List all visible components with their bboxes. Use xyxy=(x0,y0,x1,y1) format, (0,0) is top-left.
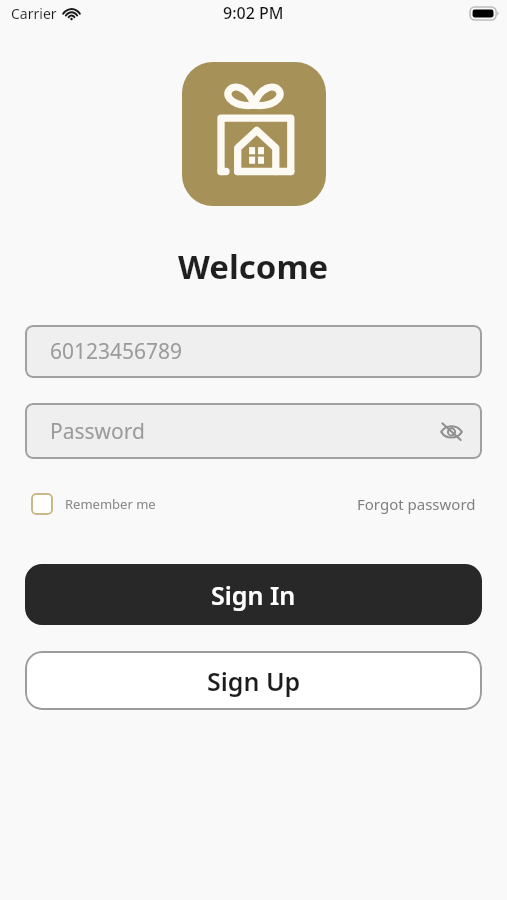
button[interactable]: Remember me xyxy=(31,493,156,515)
button[interactable]: 60123456789 xyxy=(25,325,482,378)
staticText: Remember me xyxy=(65,495,156,513)
staticText: Sign Up xyxy=(207,664,301,698)
button[interactable]: Password xyxy=(25,403,482,459)
staticText: Sign In xyxy=(211,578,296,612)
staticText: 9:02 PM xyxy=(223,2,284,24)
staticText: Welcome xyxy=(178,244,329,284)
staticText: Carrier xyxy=(11,4,57,23)
button[interactable]: Show password xyxy=(436,416,466,446)
button[interactable]: Sign Up xyxy=(25,651,482,710)
staticText: 60123456789 xyxy=(50,337,183,366)
staticText: Password xyxy=(50,417,145,446)
button[interactable]: Forgot password xyxy=(357,494,476,514)
button[interactable]: Sign In xyxy=(25,564,482,625)
